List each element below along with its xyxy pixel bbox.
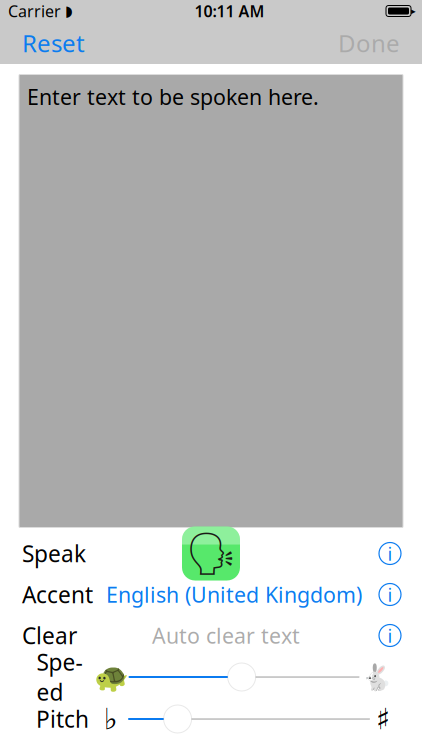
staticText: Speed [36,647,82,707]
staticText: Pitch [36,704,89,734]
staticText: ◗ [65,3,73,19]
button[interactable]: English (United Kingdom) [102,574,366,615]
button[interactable]: Clear info [375,620,405,650]
staticText: i [387,582,392,607]
staticText: 10:11 AM [194,0,264,22]
staticText: ♯ [376,702,390,736]
staticText: Done [338,27,400,59]
button[interactable]: Auto clear text [148,615,304,656]
staticText: Enter text to be spoken here. [27,82,319,111]
staticText: Speak [22,538,86,568]
button[interactable]: Done [328,19,410,67]
staticText: Carrier [8,0,61,22]
staticText: Clear [22,620,77,650]
staticText: 🐢 [94,661,129,693]
staticText: ♭ [104,702,118,736]
staticText: English (United Kingdom) [106,580,362,609]
button[interactable]: Speak [182,526,240,580]
staticText: Accent [22,579,93,609]
staticText: 🐇 [360,662,392,691]
button[interactable]: Accent info [375,579,405,609]
staticText: i [387,623,392,648]
staticText: 🗣 [185,530,237,577]
staticText: Auto clear text [152,621,300,650]
staticText: Reset [22,27,85,59]
staticText: ▸ [411,6,416,16]
button[interactable]: Speak info [375,538,405,568]
button[interactable]: Reset [12,19,95,67]
staticText: i [387,541,392,566]
